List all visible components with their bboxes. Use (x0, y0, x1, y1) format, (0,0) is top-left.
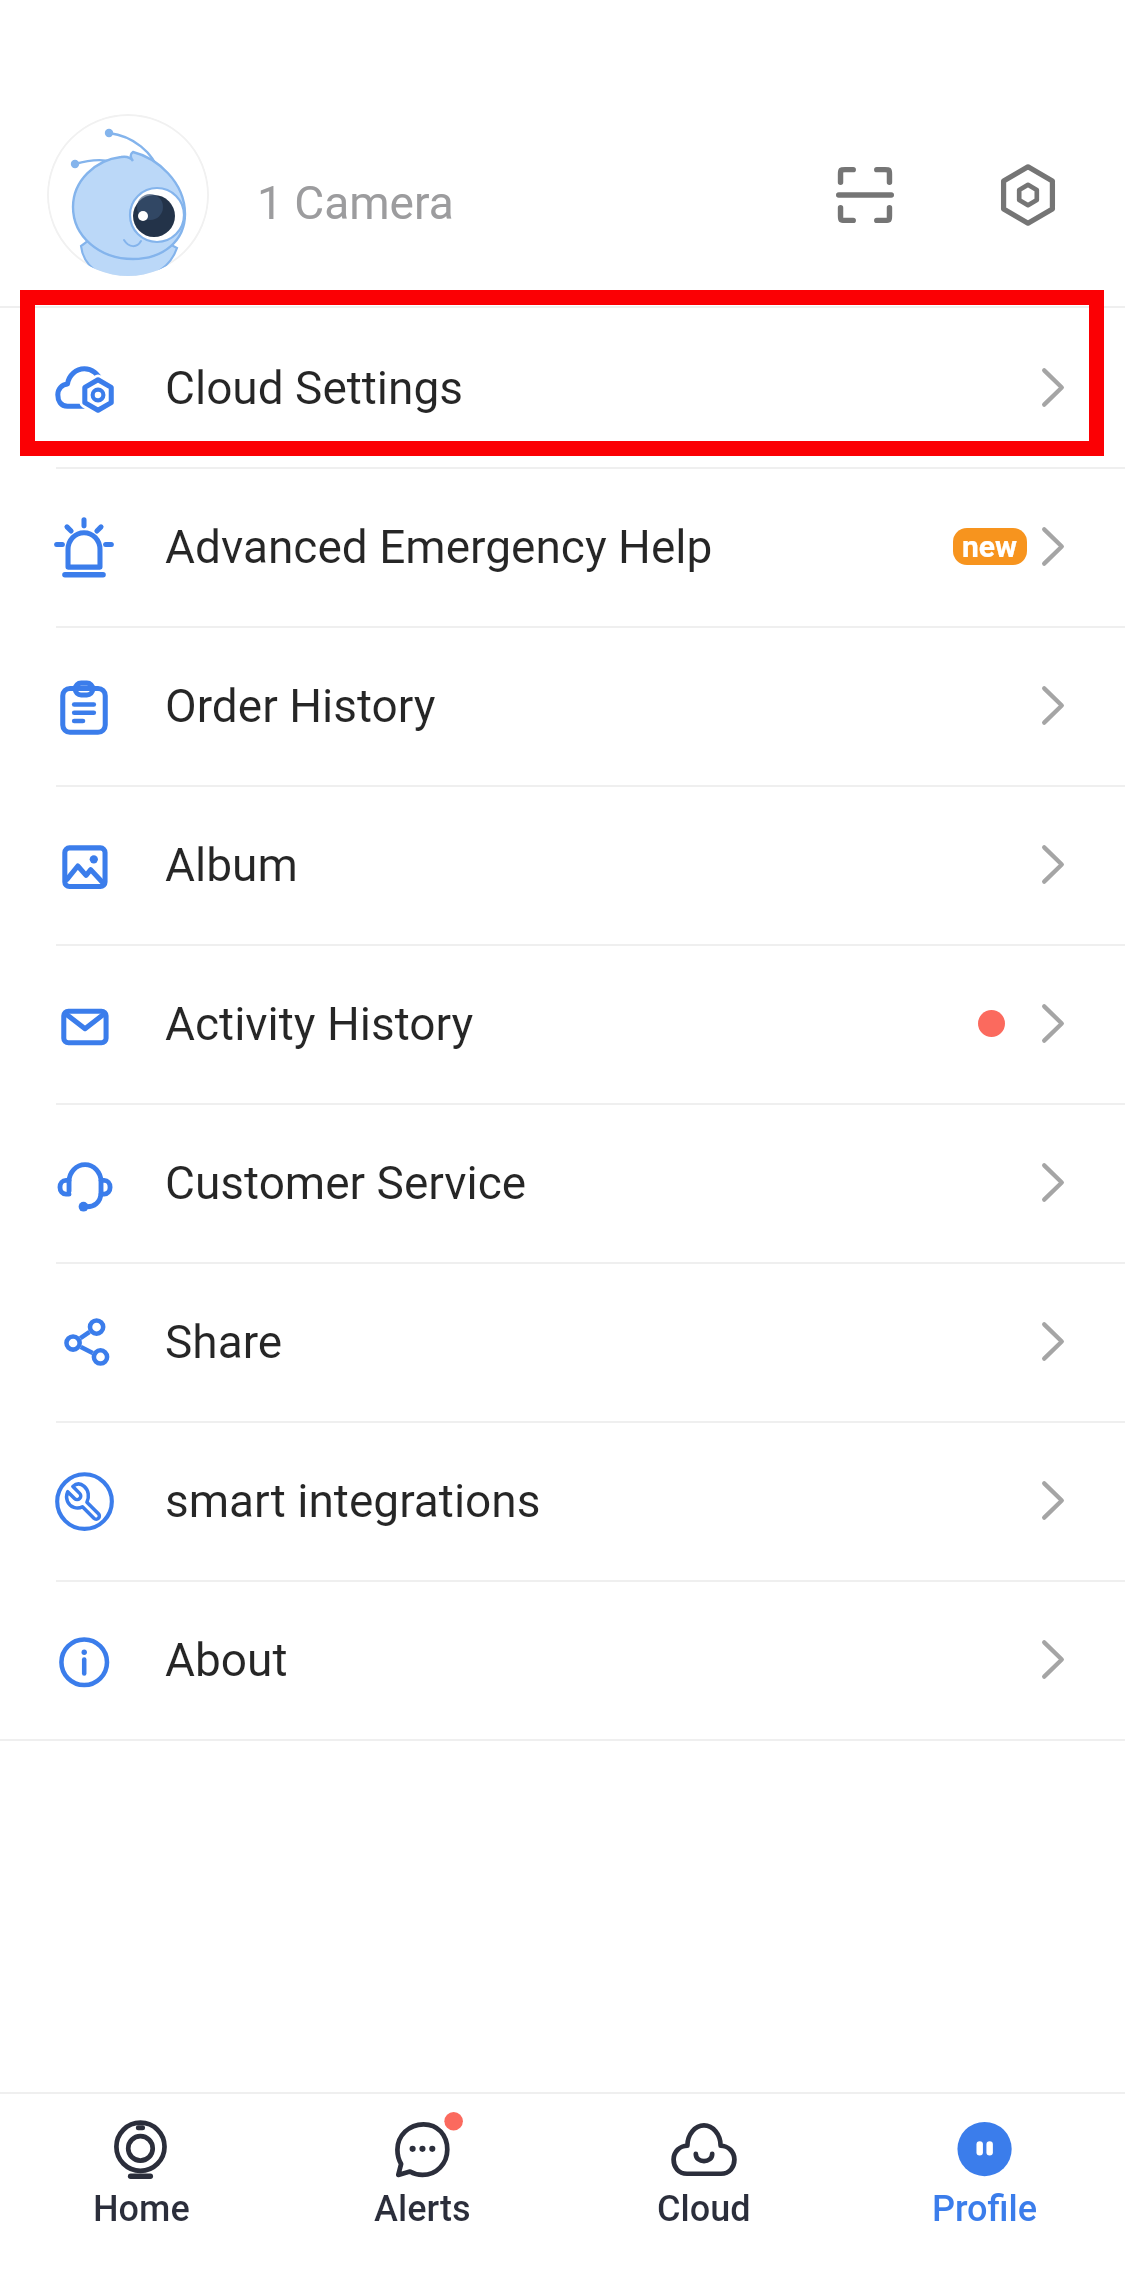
button[interactable]: Order History (0, 626, 1125, 785)
staticText: Home (93, 2188, 190, 2230)
staticText: Customer Service (165, 1156, 527, 1210)
staticText: 1 Camera (257, 176, 454, 230)
staticText: Album (165, 838, 298, 892)
button[interactable]: About (0, 1580, 1125, 1739)
button[interactable]: Home (0, 2094, 282, 2292)
button[interactable]: Album (0, 785, 1125, 944)
staticText: Activity History (165, 997, 474, 1051)
button[interactable]: Customer Service (0, 1103, 1125, 1262)
button[interactable]: Activity History (0, 944, 1125, 1103)
staticText: new (962, 529, 1018, 564)
staticText: Order History (165, 679, 436, 733)
button[interactable]: Share (0, 1262, 1125, 1421)
button[interactable]: Profile avatar (47, 114, 209, 276)
button[interactable]: Cloud Settings (0, 308, 1125, 467)
button[interactable]: Alerts (282, 2094, 563, 2292)
button[interactable]: Advanced Emergency Help (0, 467, 1125, 626)
button[interactable]: Cloud (563, 2094, 844, 2292)
button[interactable]: Profile (844, 2094, 1125, 2292)
button[interactable]: Scan QR code (811, 141, 919, 249)
staticText: Alerts (374, 2188, 471, 2230)
staticText: Cloud Settings (165, 361, 464, 415)
staticText: Share (165, 1315, 283, 1369)
button[interactable]: Settings (974, 141, 1082, 249)
staticText: About (165, 1633, 288, 1687)
staticText: smart integrations (165, 1474, 541, 1528)
staticText: Profile (932, 2188, 1038, 2230)
staticText: Cloud (657, 2188, 751, 2230)
button[interactable]: smart integrations (0, 1421, 1125, 1580)
staticText: Advanced Emergency Help (165, 520, 713, 574)
